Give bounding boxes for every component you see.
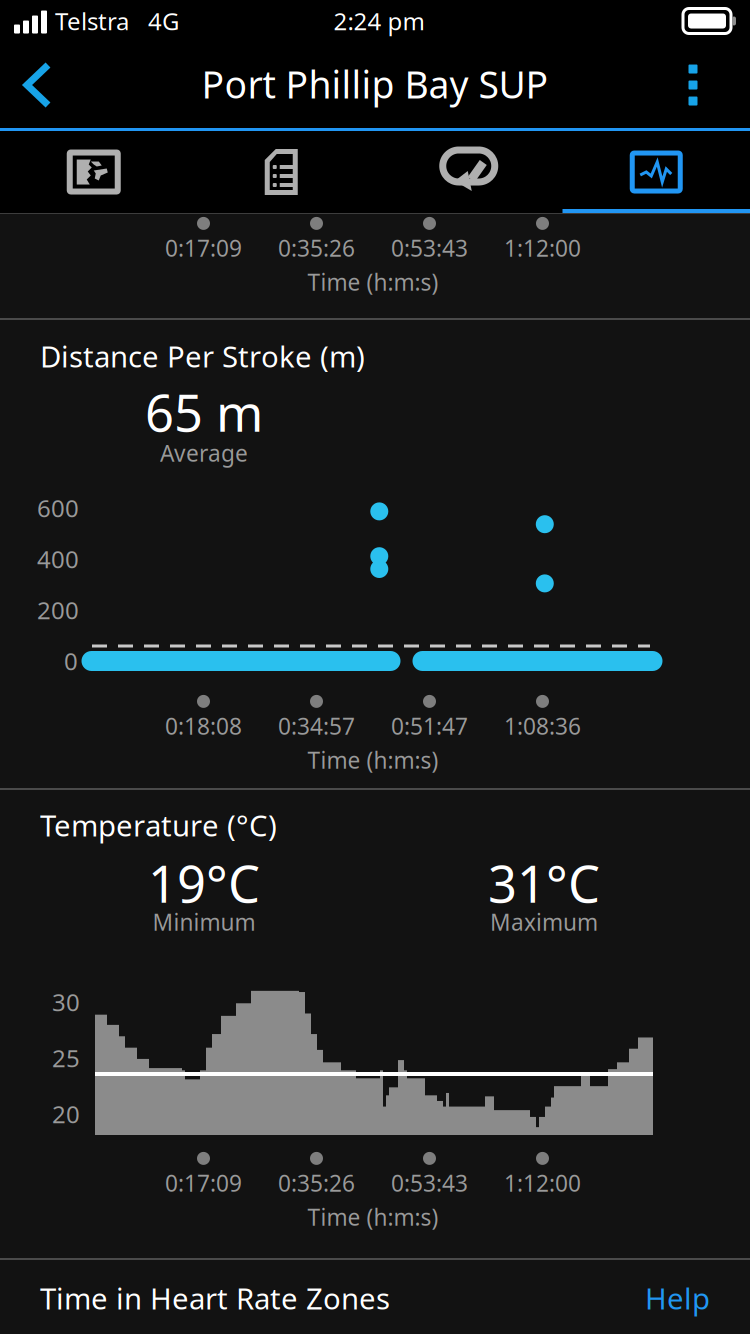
staticText: 0:53:43 [391, 233, 468, 263]
staticText: 0:51:47 [391, 711, 468, 741]
staticText: 0:17:09 [165, 233, 242, 263]
staticText: 400 [37, 543, 79, 575]
staticText: 30 [52, 986, 80, 1018]
button[interactable]: Laps [375, 131, 562, 213]
staticText: Distance Per Stroke (m) [40, 336, 365, 375]
staticText: Minimum [152, 907, 255, 937]
button[interactable]: Time in Heart Rate Zones [0, 1260, 750, 1334]
staticText: Temperature (°C) [40, 805, 277, 844]
staticText: Port Phillip Bay SUP [201, 59, 548, 109]
button[interactable]: Details [187, 131, 375, 213]
staticText: Average [160, 438, 248, 468]
staticText: 20 [52, 1098, 80, 1130]
staticText: 0:35:26 [278, 1168, 355, 1198]
staticText: 65 m [145, 378, 263, 446]
staticText: 0:34:57 [278, 711, 355, 741]
button[interactable]: Charts [562, 131, 750, 213]
button[interactable]: Map [0, 131, 187, 213]
staticText: 0:18:08 [165, 711, 242, 741]
staticText: 31°C [488, 849, 600, 917]
staticText: Time (h:m:s) [307, 1202, 438, 1232]
staticText: 1:12:00 [504, 1168, 581, 1198]
staticText: Time in Heart Rate Zones [40, 1278, 390, 1317]
staticText: Time (h:m:s) [307, 745, 438, 775]
button[interactable]: Back [0, 44, 76, 126]
staticText: 4G [148, 5, 179, 37]
staticText: 0:35:26 [278, 233, 355, 263]
staticText: Help [645, 1278, 710, 1317]
staticText: Time (h:m:s) [307, 267, 438, 297]
staticText: 19°C [148, 849, 260, 917]
staticText: 0 [64, 645, 78, 677]
staticText: Maximum [490, 907, 598, 937]
staticText: 0:53:43 [391, 1168, 468, 1198]
staticText: Telstra [55, 5, 129, 37]
staticText: 1:12:00 [504, 233, 581, 263]
staticText: 1:08:36 [504, 711, 581, 741]
staticText: 600 [37, 492, 79, 524]
staticText: 0:17:09 [165, 1168, 242, 1198]
staticText: 2:24 pm [333, 5, 424, 37]
staticText: 200 [37, 594, 79, 626]
button[interactable]: More options [655, 44, 731, 126]
staticText: 25 [52, 1042, 80, 1074]
